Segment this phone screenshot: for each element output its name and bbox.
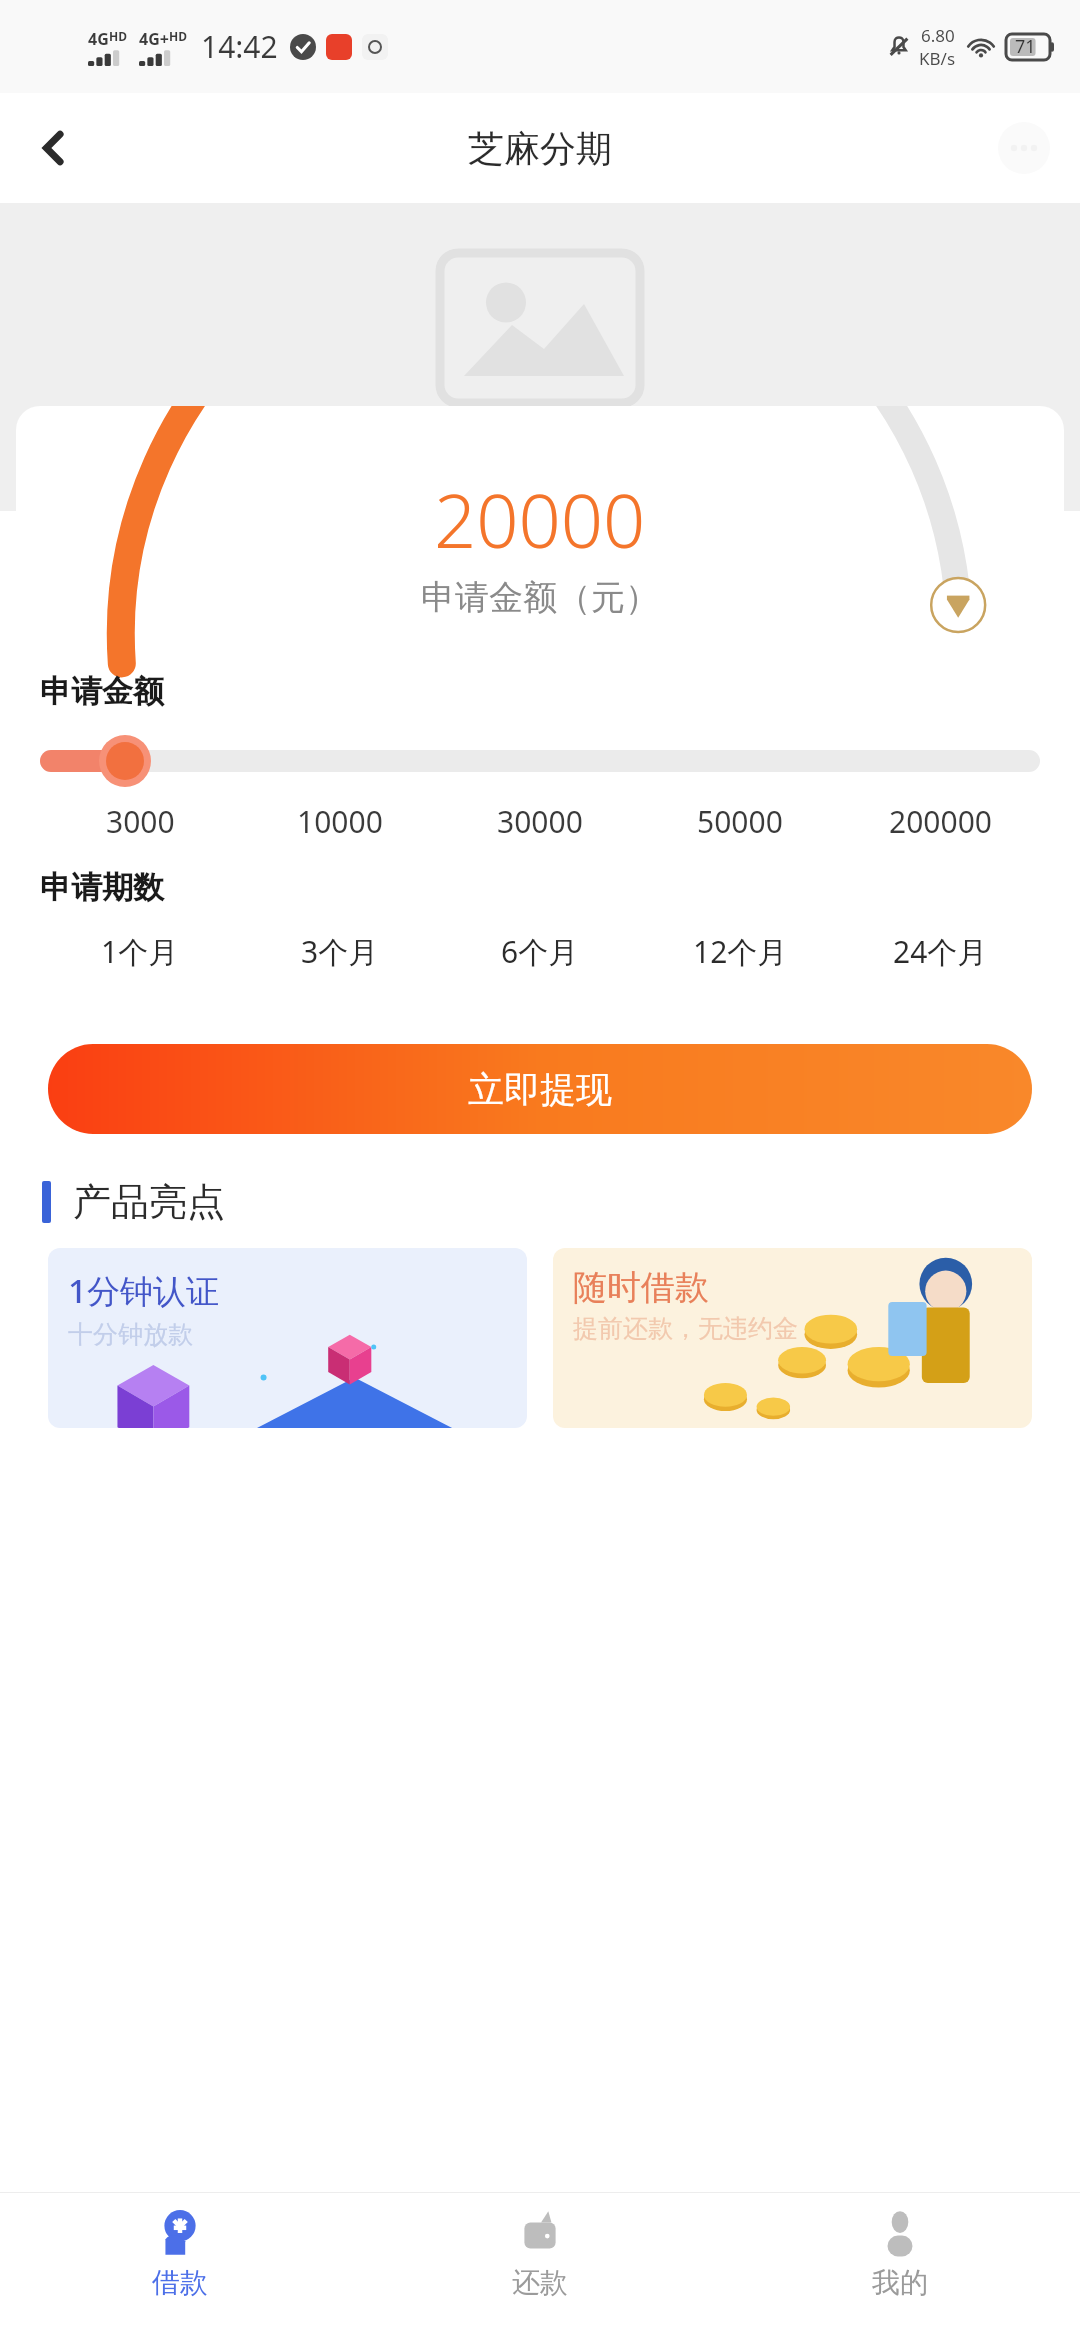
- staticText: 24个月: [893, 931, 988, 972]
- staticText: 申请金额: [40, 672, 164, 711]
- staticText: KB/s: [919, 47, 956, 70]
- staticText: 1个月: [101, 931, 179, 972]
- staticText: HD: [109, 28, 127, 44]
- staticText: 30000: [497, 801, 583, 842]
- button[interactable]: 立即提现: [48, 1044, 1032, 1134]
- staticText: 6个月: [501, 931, 579, 972]
- staticText: 4G+: [139, 28, 169, 50]
- button[interactable]: 我的: [720, 2193, 1080, 2340]
- staticText: 4G: [88, 28, 109, 50]
- staticText: 我的: [872, 2265, 928, 2300]
- staticText: 10000: [297, 801, 383, 842]
- staticText: 提前还款，无违约金: [573, 1313, 798, 1344]
- button[interactable]: Back: [18, 112, 90, 184]
- button[interactable]: 6个月: [440, 931, 640, 972]
- staticText: 3000: [106, 801, 175, 842]
- staticText: 十分钟放款: [68, 1319, 193, 1350]
- button[interactable]: 1个月: [40, 931, 240, 972]
- button[interactable]: [40, 737, 1040, 785]
- staticText: 14:42: [201, 26, 278, 67]
- button[interactable]: 借款: [0, 2193, 360, 2340]
- button[interactable]: 还款: [360, 2193, 720, 2340]
- staticText: 20000: [434, 469, 646, 570]
- button[interactable]: 24个月: [840, 931, 1040, 972]
- staticText: 6.80: [921, 24, 955, 47]
- button[interactable]: 随时借款: [553, 1248, 1032, 1428]
- button[interactable]: 3个月: [240, 931, 440, 972]
- staticText: 3个月: [301, 931, 379, 972]
- staticText: 申请金额（元）: [421, 576, 659, 619]
- staticText: 71: [1015, 34, 1036, 59]
- staticText: 产品亮点: [73, 1178, 225, 1226]
- staticText: 200000: [889, 801, 992, 842]
- staticText: 立即提现: [468, 1067, 612, 1112]
- staticText: 50000: [697, 801, 783, 842]
- staticText: 芝麻分期: [468, 126, 612, 171]
- staticText: 还款: [512, 2265, 568, 2300]
- staticText: 12个月: [693, 931, 788, 972]
- button[interactable]: 12个月: [640, 931, 840, 972]
- staticText: 借款: [152, 2265, 208, 2300]
- staticText: 随时借款: [573, 1266, 709, 1309]
- staticText: 申请期数: [40, 868, 164, 907]
- staticText: HD: [169, 28, 187, 44]
- staticText: 1分钟认证: [68, 1268, 219, 1313]
- button[interactable]: 1分钟认证: [48, 1248, 527, 1428]
